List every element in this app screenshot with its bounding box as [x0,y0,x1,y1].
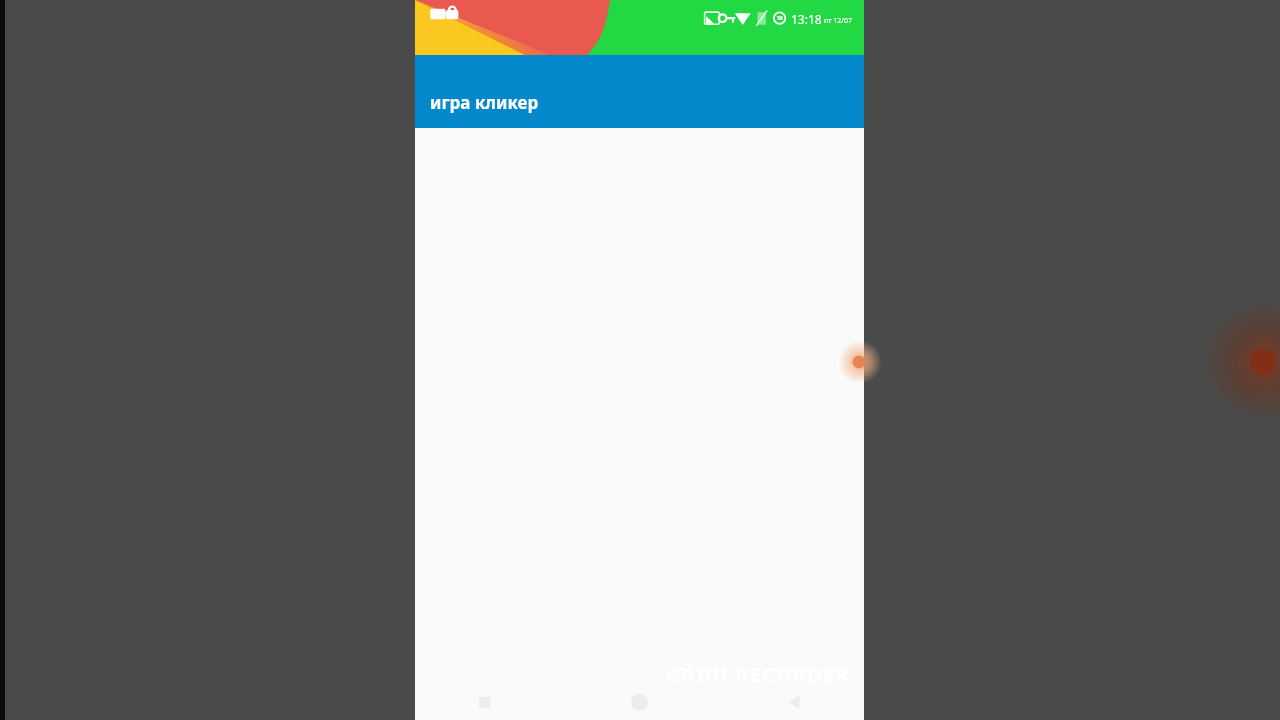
staticText: пт 12/07 [824,16,852,26]
staticText: игра кликер [430,91,539,114]
button[interactable]: игра кликер [415,55,864,128]
other: Recorder [415,0,864,720]
staticText: 13:18 [791,11,822,27]
staticText: 50 [777,15,783,22]
